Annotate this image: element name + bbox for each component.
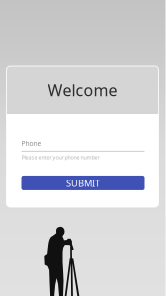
staticText: SUBMIT <box>66 177 100 189</box>
staticText: Please enter your phone number <box>21 154 99 161</box>
button[interactable]: SUBMIT <box>21 176 144 190</box>
staticText: Phone <box>21 139 41 148</box>
staticText: Welcome <box>47 79 117 101</box>
